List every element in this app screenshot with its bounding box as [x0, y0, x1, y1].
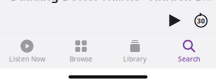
- staticText: Search: [178, 55, 200, 63]
- staticText: Library: [123, 55, 147, 63]
- button[interactable]: Skip forward 30 seconds: [190, 6, 212, 30]
- button[interactable]: Search: [162, 34, 216, 68]
- staticText: Listen Now: [9, 55, 45, 63]
- button[interactable]: Play: [164, 6, 186, 30]
- button[interactable]: Listen Now: [0, 34, 54, 68]
- button[interactable]: Browse: [54, 34, 108, 68]
- staticText: 30: [197, 17, 205, 25]
- staticText: Building Better Habits · Hidden Brain Pr…: [10, 0, 216, 4]
- button[interactable]: Library: [108, 34, 162, 68]
- staticText: Browse: [69, 55, 92, 63]
